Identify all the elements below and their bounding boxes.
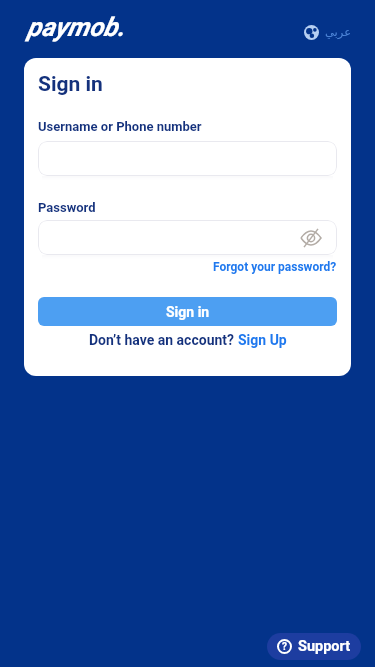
button[interactable]: Sign in [38, 297, 337, 326]
staticText: ? [282, 641, 287, 653]
staticText: Sign in [166, 304, 210, 320]
staticText: Support [298, 638, 351, 655]
button[interactable]: Forgot your password? [213, 260, 337, 274]
button[interactable]: عربي [304, 24, 351, 39]
button[interactable]: ? [267, 633, 361, 660]
staticText: Username or Phone number [38, 119, 202, 134]
button[interactable] [38, 220, 337, 255]
staticText: paymob. [27, 12, 125, 42]
staticText: Don’t have an account? [89, 332, 238, 348]
staticText: Password [38, 200, 96, 215]
button[interactable] [38, 141, 337, 176]
staticText: Sign in [38, 72, 103, 97]
button[interactable]: Sign Up [238, 332, 287, 348]
staticText: عربي [325, 25, 351, 38]
